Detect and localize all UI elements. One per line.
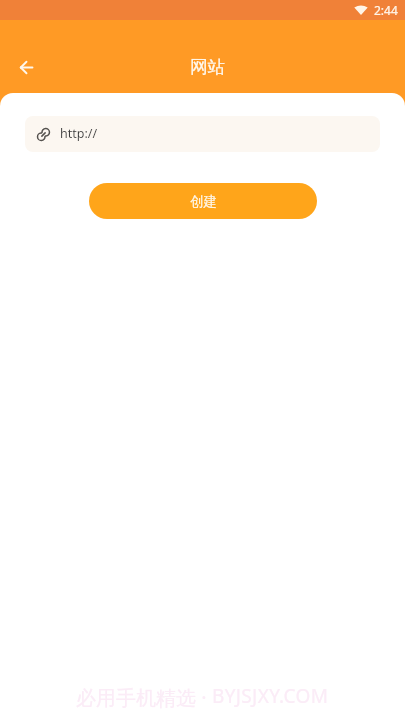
- staticText: 创建: [190, 193, 217, 210]
- button[interactable]: 创建: [89, 183, 317, 219]
- staticText: BYJSJXY.COM: [212, 683, 329, 709]
- staticText: 网站: [190, 56, 225, 78]
- staticText: 2:44: [374, 2, 398, 18]
- button[interactable]: http://: [25, 116, 380, 152]
- staticText: 必用手机精选 ·: [76, 684, 212, 711]
- staticText: http://: [60, 125, 98, 142]
- button[interactable]: Back: [9, 51, 41, 83]
